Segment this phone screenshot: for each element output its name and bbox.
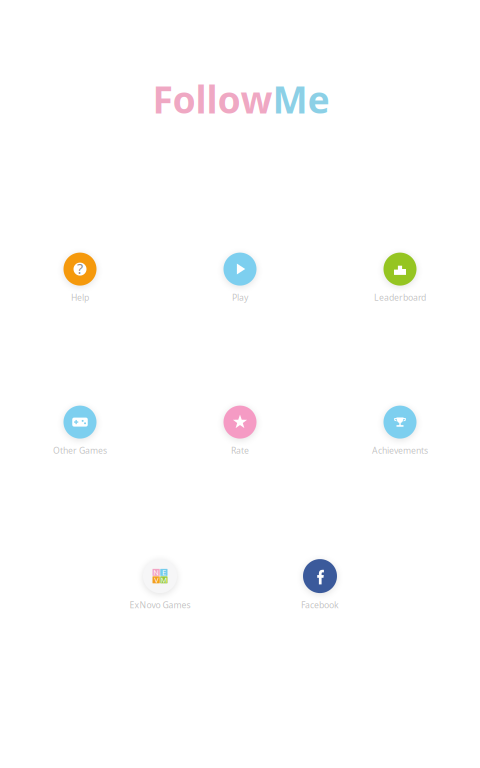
staticText: N bbox=[153, 567, 159, 577]
staticText: M bbox=[160, 575, 167, 585]
staticText: Other Games bbox=[53, 445, 107, 456]
button[interactable]: Rate bbox=[175, 406, 305, 456]
staticText: Me bbox=[272, 74, 329, 124]
staticText: ? bbox=[77, 259, 83, 278]
button[interactable]: ? bbox=[15, 253, 145, 303]
staticText: ExNovo Games bbox=[129, 599, 190, 611]
button[interactable]: Achievements bbox=[335, 406, 465, 456]
staticText: E bbox=[162, 567, 166, 577]
button[interactable]: Leaderboard bbox=[335, 253, 465, 303]
staticText: Play bbox=[232, 292, 248, 303]
button[interactable]: Facebook bbox=[255, 559, 385, 611]
staticText: Follow bbox=[152, 74, 272, 124]
button[interactable]: Other Games bbox=[15, 406, 145, 456]
staticText: Facebook bbox=[301, 599, 339, 611]
staticText: Leaderboard bbox=[374, 292, 426, 303]
staticText: Achievements bbox=[372, 445, 428, 456]
staticText: Rate bbox=[231, 445, 249, 456]
staticText: Help bbox=[71, 292, 89, 303]
button[interactable]: N bbox=[95, 559, 225, 611]
button[interactable]: Play bbox=[175, 253, 305, 303]
staticText: V bbox=[154, 575, 158, 585]
